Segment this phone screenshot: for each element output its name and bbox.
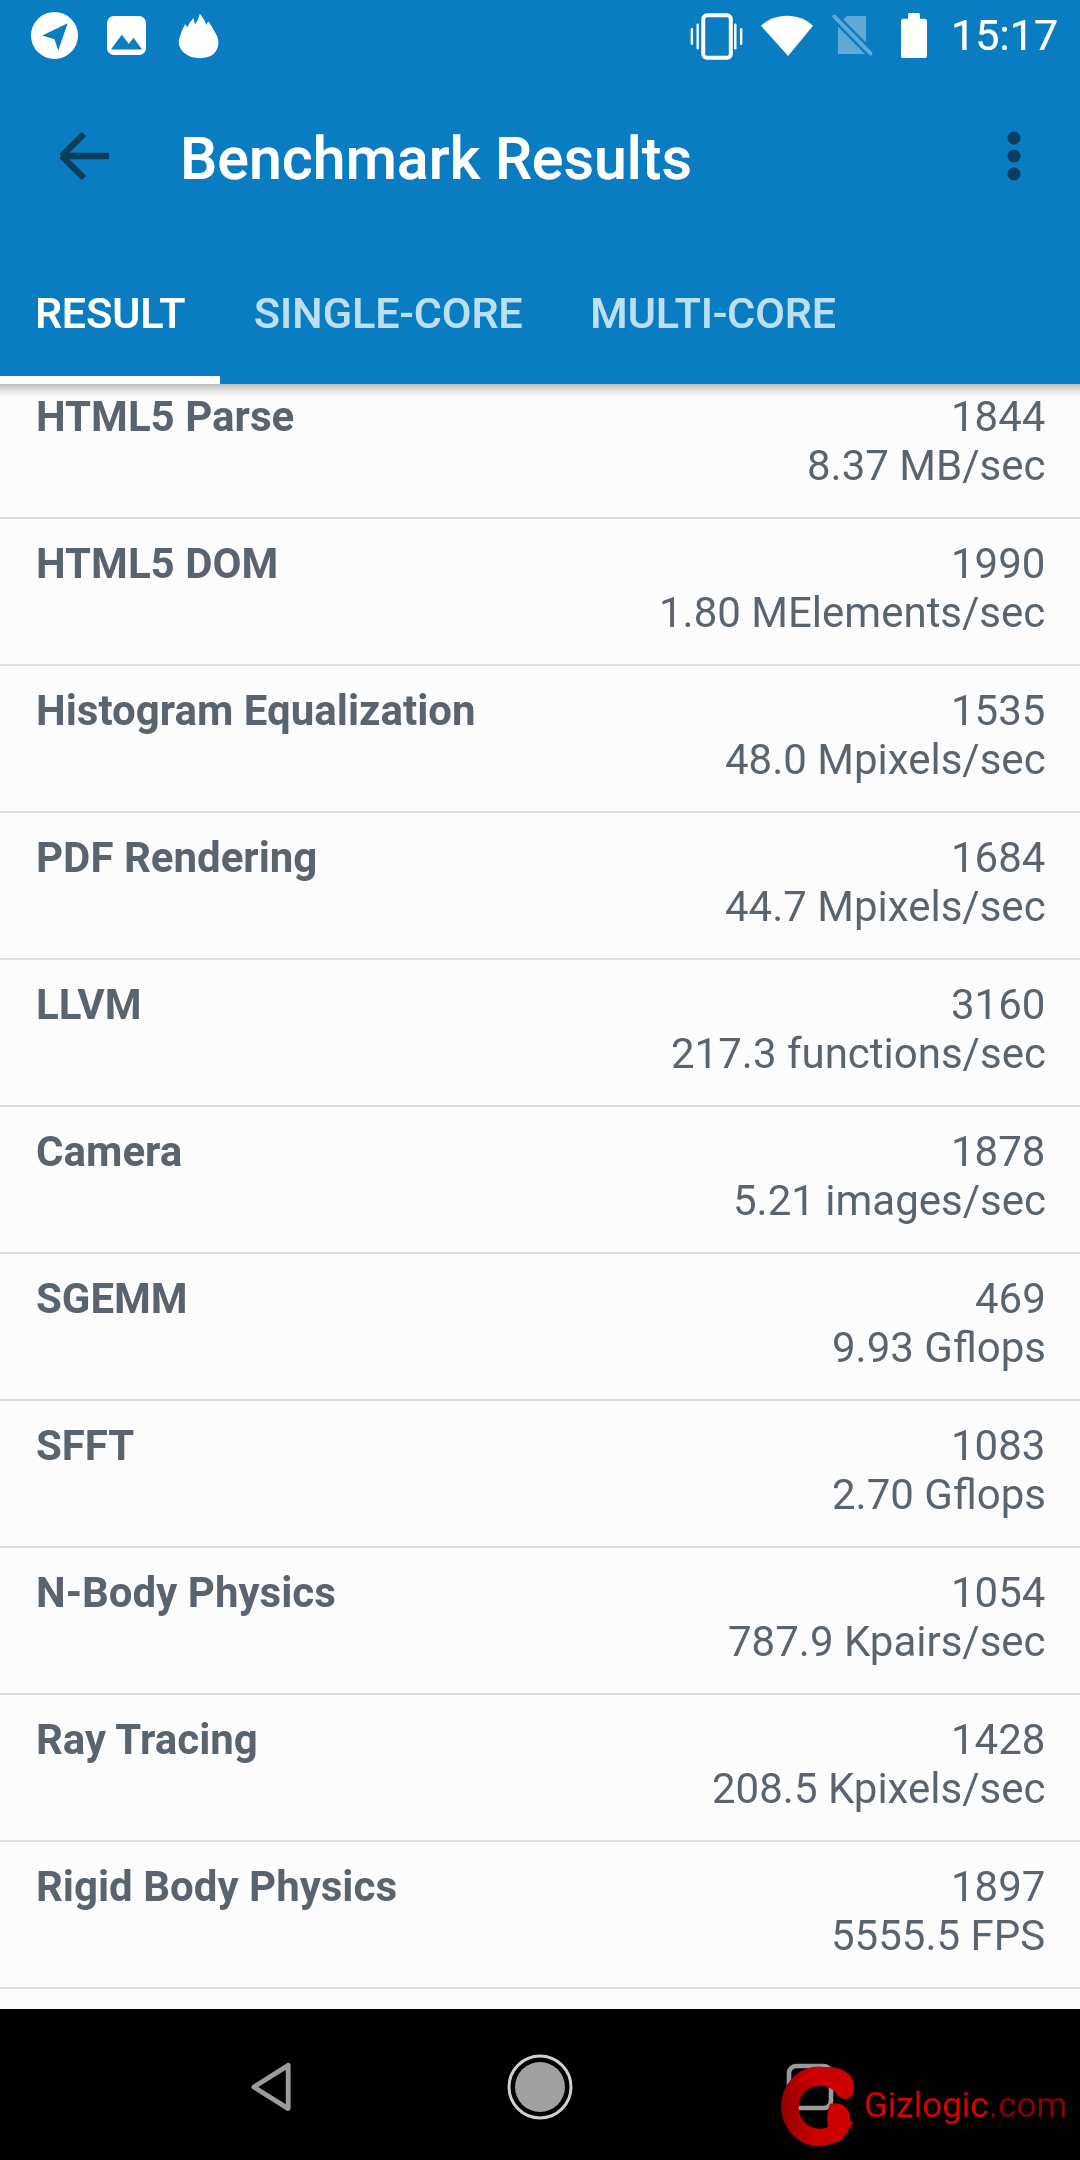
button[interactable]: Rigid Body Physics [0, 1840, 1080, 1987]
staticText: 1428 [951, 1715, 1046, 1764]
staticText: 8.37 MB/sec [807, 441, 1046, 490]
button[interactable]: Ray Tracing [0, 1693, 1080, 1840]
button[interactable]: SGEMM [0, 1252, 1080, 1399]
button[interactable]: SINGLE-CORE [220, 232, 556, 384]
staticText: 1990 [951, 539, 1046, 588]
button[interactable]: Home [485, 2032, 595, 2142]
staticText: 110.2 Mpixels/sec [701, 2058, 1046, 2107]
staticText: 1878 [951, 1127, 1046, 1176]
staticText: SGEMM [36, 1274, 188, 1323]
button[interactable]: Camera [0, 1105, 1080, 1252]
staticText: RESULT [35, 288, 186, 338]
button[interactable]: Navigate up [28, 100, 140, 212]
staticText: SINGLE-CORE [254, 288, 523, 338]
staticText: 469 [975, 1274, 1046, 1323]
staticText: 217.3 functions/sec [671, 1029, 1046, 1078]
staticText: Gizlogic [864, 2085, 989, 2126]
staticText: HTML5 DOM [36, 539, 279, 588]
staticText: 787.9 Kpairs/sec [728, 1617, 1046, 1666]
button[interactable]: Sobel [0, 1987, 1080, 2134]
staticText: 1054 [951, 1568, 1046, 1617]
staticText: 48.0 Mpixels/sec [725, 735, 1046, 784]
button[interactable]: HTML5 DOM [0, 517, 1080, 664]
staticText: 1684 [951, 833, 1046, 882]
staticText: 5.21 images/sec [733, 1176, 1046, 1225]
button[interactable]: HTML5 Parse [0, 370, 1080, 517]
button[interactable]: LLVM [0, 958, 1080, 1105]
staticText: Benchmark Results [180, 124, 692, 193]
staticText: 1897 [951, 1862, 1046, 1911]
button[interactable]: N-Body Physics [0, 1546, 1080, 1693]
staticText: 3160 [951, 980, 1046, 1029]
staticText: SFFT [36, 1421, 135, 1470]
staticText: 1.80 MElements/sec [659, 588, 1046, 637]
button[interactable]: RESULT [0, 232, 220, 384]
staticText: .com [989, 2085, 1068, 2126]
staticText: Camera [36, 1127, 183, 1176]
staticText: Rigid Body Physics [36, 1862, 398, 1911]
button[interactable]: MULTI-CORE [556, 232, 869, 384]
staticText: 15:17 [951, 10, 1059, 60]
staticText: Ray Tracing [36, 1715, 258, 1764]
staticText: 5555.5 FPS [831, 1911, 1046, 1960]
staticText: 1535 [951, 686, 1046, 735]
staticText: PDF Rendering [36, 833, 318, 882]
staticText: 1844 [951, 392, 1046, 441]
staticText: 9.93 Gflops [832, 1323, 1046, 1372]
staticText: 2.70 Gflops [832, 1470, 1046, 1519]
staticText: HTML5 Parse [36, 392, 295, 441]
staticText: 208.5 Kpixels/sec [712, 1764, 1046, 1813]
button[interactable]: SFFT [0, 1399, 1080, 1546]
button[interactable]: Histogram Equalization [0, 664, 1080, 811]
staticText: Histogram Equalization [36, 686, 476, 735]
staticText: MULTI-CORE [590, 288, 836, 338]
button[interactable]: Back [216, 2032, 326, 2142]
staticText: N-Body Physics [36, 1568, 336, 1617]
staticText: 44.7 Mpixels/sec [725, 882, 1046, 931]
button[interactable]: PDF Rendering [0, 811, 1080, 958]
button[interactable]: Recent apps [755, 2032, 865, 2142]
staticText: LLVM [36, 980, 142, 1029]
staticText: 1083 [951, 1421, 1046, 1470]
button[interactable]: More options [958, 100, 1070, 212]
